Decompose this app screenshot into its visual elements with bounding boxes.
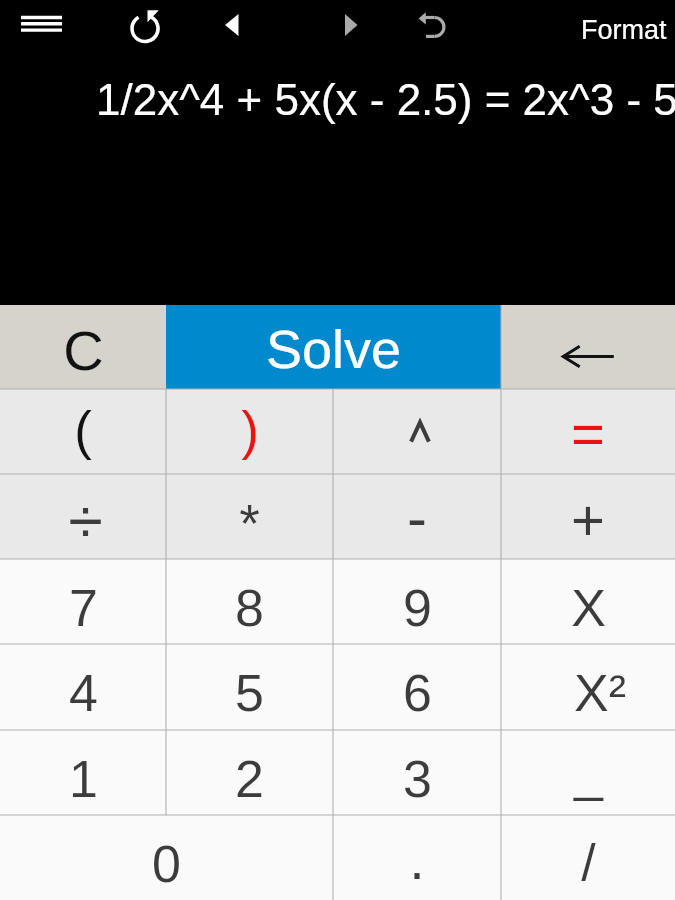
staticText: 4 — [69, 664, 98, 722]
button[interactable]: Redo — [124, 4, 166, 46]
staticText: X — [571, 579, 606, 637]
button[interactable]: Next — [330, 5, 371, 45]
staticText: . — [409, 828, 425, 891]
button[interactable]: Menu — [20, 4, 63, 44]
button[interactable]: C — [0, 305, 166, 389]
button[interactable]: Solve — [166, 305, 501, 389]
staticText: 0 — [152, 835, 181, 893]
staticText: 1 — [69, 750, 98, 808]
staticText: C — [63, 319, 104, 382]
button[interactable]: X — [501, 559, 675, 644]
button[interactable]: 4 — [0, 644, 166, 730]
button[interactable]: 5 — [166, 644, 333, 730]
button[interactable]: ( — [0, 389, 166, 474]
button[interactable]: / — [501, 815, 675, 900]
button[interactable]: Backspace — [501, 305, 675, 389]
button[interactable]: 2 — [166, 730, 333, 815]
button[interactable]: 8 — [166, 559, 333, 644]
staticText: 6 — [403, 664, 432, 722]
staticText: 9 — [403, 579, 432, 637]
staticText: 2 — [235, 750, 264, 808]
staticText: ) — [241, 401, 259, 460]
button[interactable]: 7 — [0, 559, 166, 644]
button[interactable]: Previous — [211, 5, 252, 45]
staticText: ÷ — [68, 486, 103, 556]
staticText: _ — [574, 744, 603, 802]
button[interactable]: Power — [333, 389, 501, 474]
staticText: 5 — [235, 664, 264, 722]
staticText: = — [571, 401, 605, 466]
button[interactable]: 6 — [333, 644, 501, 730]
button[interactable]: _ — [501, 730, 675, 815]
button[interactable]: 0 — [0, 815, 333, 900]
button[interactable]: = — [501, 389, 675, 474]
button[interactable]: ) — [166, 389, 333, 474]
staticText: ( — [74, 401, 92, 460]
button[interactable]: 3 — [333, 730, 501, 815]
staticText: 8 — [235, 579, 264, 637]
button[interactable]: ÷ — [0, 474, 166, 559]
staticText: Format — [581, 15, 667, 45]
button[interactable]: Format — [572, 9, 675, 51]
staticText: / — [581, 834, 596, 892]
staticText: X² — [574, 664, 626, 722]
staticText: + — [571, 487, 605, 552]
staticText: Solve — [266, 319, 402, 379]
other: Power — [397, 412, 437, 452]
button[interactable]: . — [333, 815, 501, 900]
button[interactable]: 9 — [333, 559, 501, 644]
staticText: 3 — [403, 750, 432, 808]
staticText: 1/2x^4 + 5x(x - 2.5) = 2x^3 - 5 — [96, 75, 675, 124]
button[interactable]: Undo — [410, 6, 454, 46]
button[interactable]: 1 — [0, 730, 166, 815]
staticText: * — [239, 494, 260, 553]
button[interactable]: - — [333, 474, 501, 559]
staticText: - — [407, 484, 427, 551]
button[interactable]: X² — [501, 644, 675, 730]
button[interactable]: + — [501, 474, 675, 559]
button[interactable]: * — [166, 474, 333, 559]
other: Backspace — [558, 327, 618, 367]
staticText: 7 — [69, 579, 98, 637]
